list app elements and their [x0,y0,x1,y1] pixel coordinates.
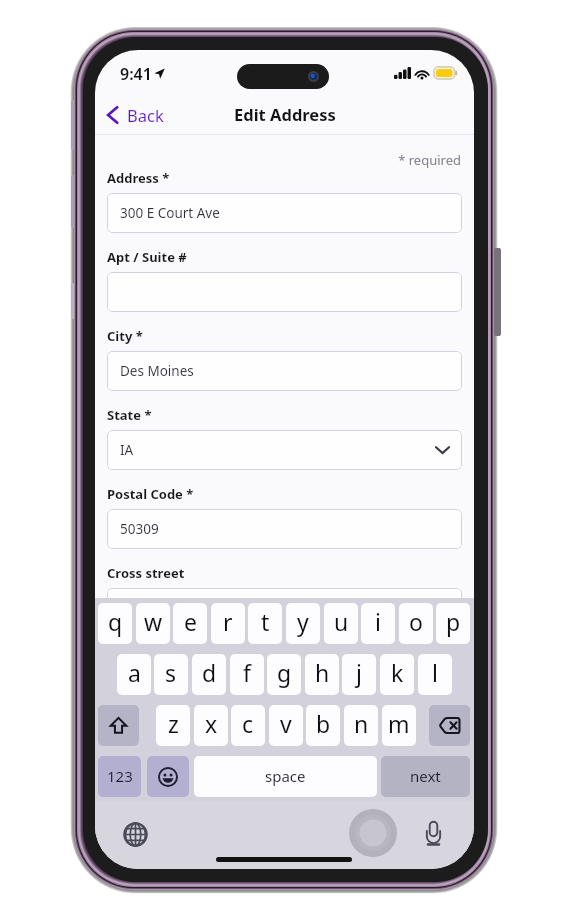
staticText: b [316,708,331,739]
button[interactable]: Emoji [147,756,189,797]
button[interactable]: f [230,654,264,695]
button[interactable]: u [324,603,358,644]
button[interactable]: Power [494,248,501,336]
button[interactable]: j [342,654,376,695]
button[interactable]: w [136,603,170,644]
staticText: x [205,708,218,739]
button[interactable]: r [211,603,245,644]
button[interactable]: i [361,603,395,644]
button[interactable]: m [382,705,416,746]
staticText: g [277,657,292,688]
button[interactable]: a [117,654,151,695]
staticText: o [409,606,423,637]
staticText: d [202,657,217,688]
staticText: Postal Code * [107,485,194,503]
button[interactable]: Volume down [71,283,77,319]
staticText: z [168,708,179,739]
staticText: State * [107,406,152,424]
staticText: l [432,657,438,688]
button[interactable]: Backspace [429,705,470,746]
staticText: w [144,606,163,637]
button[interactable]: l [418,654,452,695]
staticText: i [375,606,381,637]
button[interactable]: y [286,603,320,644]
staticText: t [261,606,270,637]
button[interactable]: Back [99,99,172,131]
staticText: City * [107,327,143,345]
staticText: 50309 [120,520,159,538]
button[interactable]: s [154,654,188,695]
staticText: next [410,766,441,786]
staticText: v [280,708,292,739]
button[interactable]: Shift [98,705,139,746]
staticText: p [446,606,461,637]
staticText: e [184,606,197,637]
button[interactable]: c [231,705,265,746]
staticText: Apt / Suite # [107,248,187,266]
button[interactable]: q [98,603,132,644]
button[interactable]: 123 [98,756,141,797]
staticText: Back [127,104,164,126]
button[interactable]: h [305,654,339,695]
button[interactable]: Change keyboard [117,816,153,852]
staticText: s [165,657,177,688]
staticText: space [265,766,306,786]
button[interactable]: Voice input [415,815,451,851]
staticText: Edit Address [234,103,336,125]
button[interactable]: t [248,603,282,644]
button[interactable]: Dictation [349,809,397,857]
button[interactable]: space [194,756,377,797]
button[interactable]: v [269,705,303,746]
staticText: Address * [107,169,170,187]
button[interactable]: Des Moines [107,351,462,391]
staticText: 9:41 [120,63,152,85]
staticText: n [354,708,369,739]
button[interactable]: x [194,705,228,746]
button[interactable] [107,272,462,312]
staticText: Des Moines [120,362,194,380]
button[interactable]: 300 E Court Ave [107,193,462,233]
staticText: c [242,708,254,739]
button[interactable]: next [381,756,470,797]
button[interactable]: d [192,654,226,695]
staticText: u [334,606,349,637]
staticText: y [297,606,309,637]
staticText: q [108,606,123,637]
button[interactable]: Volume up [71,175,77,228]
button[interactable]: IA [107,430,462,470]
button[interactable]: o [399,603,433,644]
staticText: Cross street [107,564,185,582]
button[interactable]: z [156,705,190,746]
button[interactable]: n [344,705,378,746]
staticText: r [223,606,233,637]
button[interactable]: Silent switch [71,100,77,150]
button[interactable]: 50309 [107,509,462,549]
button[interactable]: b [306,705,340,746]
staticText: 300 E Court Ave [120,204,220,222]
button[interactable]: p [436,603,470,644]
staticText: m [388,708,410,739]
button[interactable]: k [380,654,414,695]
staticText: h [315,657,330,688]
staticText: f [243,657,251,688]
staticText: IA [120,441,134,459]
button[interactable]: g [267,654,301,695]
staticText: 123 [107,766,133,786]
staticText: k [391,657,404,688]
button[interactable] [107,588,462,628]
button[interactable]: e [173,603,207,644]
staticText: a [128,657,141,688]
staticText: j [356,657,362,688]
staticText: * required [95,151,461,169]
